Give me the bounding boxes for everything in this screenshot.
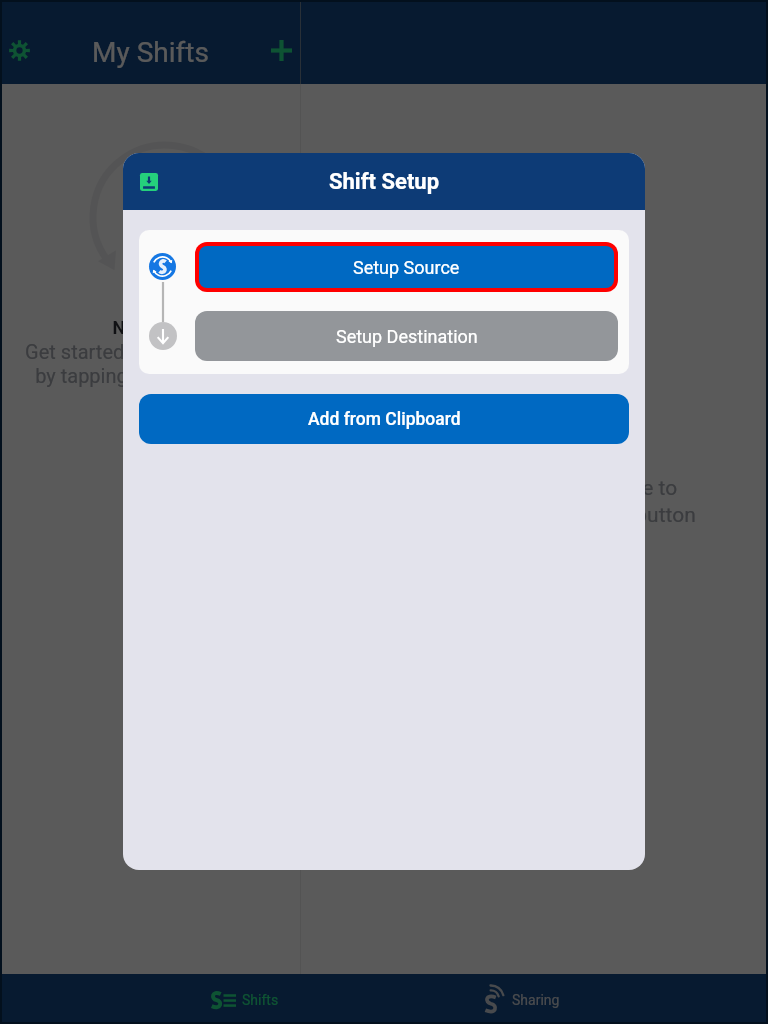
button[interactable]: Settings (6, 37, 32, 63)
staticText: Setup Source (353, 257, 460, 278)
staticText: Shifts (242, 992, 279, 1008)
staticText: Shift Setup (329, 169, 440, 195)
staticText: Sharing (512, 992, 560, 1008)
button[interactable]: Sharing (485, 974, 560, 1024)
button[interactable]: Setup Source (199, 246, 614, 288)
button[interactable]: Setup Destination (195, 311, 618, 361)
button[interactable]: Save shift (137, 170, 161, 194)
button[interactable]: Add shift (267, 36, 295, 64)
staticText: Setup Destination (336, 326, 478, 347)
button[interactable]: Add from Clipboard (139, 394, 629, 444)
staticText: Select an item or create one to get star… (374, 476, 696, 527)
button[interactable]: Shifts (211, 974, 279, 1024)
staticText: Get started by adding a shift by tapping… (25, 340, 276, 388)
staticText: No Shifts (112, 317, 188, 338)
staticText: Add from Clipboard (308, 409, 461, 430)
staticText: My Shifts (92, 36, 209, 69)
